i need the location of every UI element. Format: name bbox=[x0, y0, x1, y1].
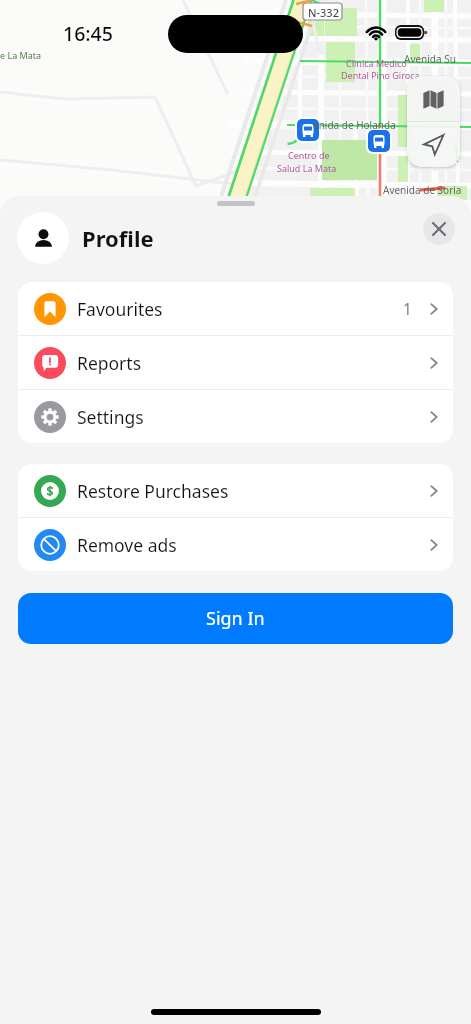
staticText: Sign In bbox=[206, 606, 265, 631]
staticText: enida de Holanda bbox=[313, 118, 396, 132]
staticText: Clinica Medico bbox=[346, 57, 407, 69]
button[interactable]: Sign In bbox=[18, 593, 453, 644]
staticText: Settings bbox=[77, 405, 144, 429]
button[interactable]: Map layers bbox=[407, 76, 460, 121]
staticText: N-332 bbox=[308, 5, 339, 20]
staticText: Avenida Su bbox=[404, 52, 456, 66]
staticText: Reports bbox=[77, 351, 142, 375]
button[interactable]: Settings bbox=[18, 390, 453, 443]
button[interactable]: My location bbox=[407, 122, 460, 167]
staticText: Centro de bbox=[288, 149, 330, 161]
staticText: Dental Pino Giroca bbox=[341, 69, 420, 81]
staticText: e La Mata bbox=[0, 49, 42, 61]
button[interactable]: Reports bbox=[18, 336, 453, 389]
staticText: Favourites bbox=[77, 297, 163, 321]
button[interactable]: Close bbox=[423, 213, 455, 245]
staticText: Salud La Mata bbox=[277, 162, 337, 174]
staticText: 1 bbox=[403, 298, 412, 319]
staticText: Remove ads bbox=[77, 533, 177, 557]
button[interactable]: Restore Purchases bbox=[18, 464, 453, 517]
staticText: Profile bbox=[82, 223, 154, 253]
button[interactable]: Favourites bbox=[18, 282, 453, 335]
staticText: Restore Purchases bbox=[77, 479, 229, 503]
staticText: 16:45 bbox=[63, 20, 113, 47]
button[interactable]: Remove ads bbox=[18, 518, 453, 571]
staticText: Avenida de Soria bbox=[383, 183, 462, 197]
